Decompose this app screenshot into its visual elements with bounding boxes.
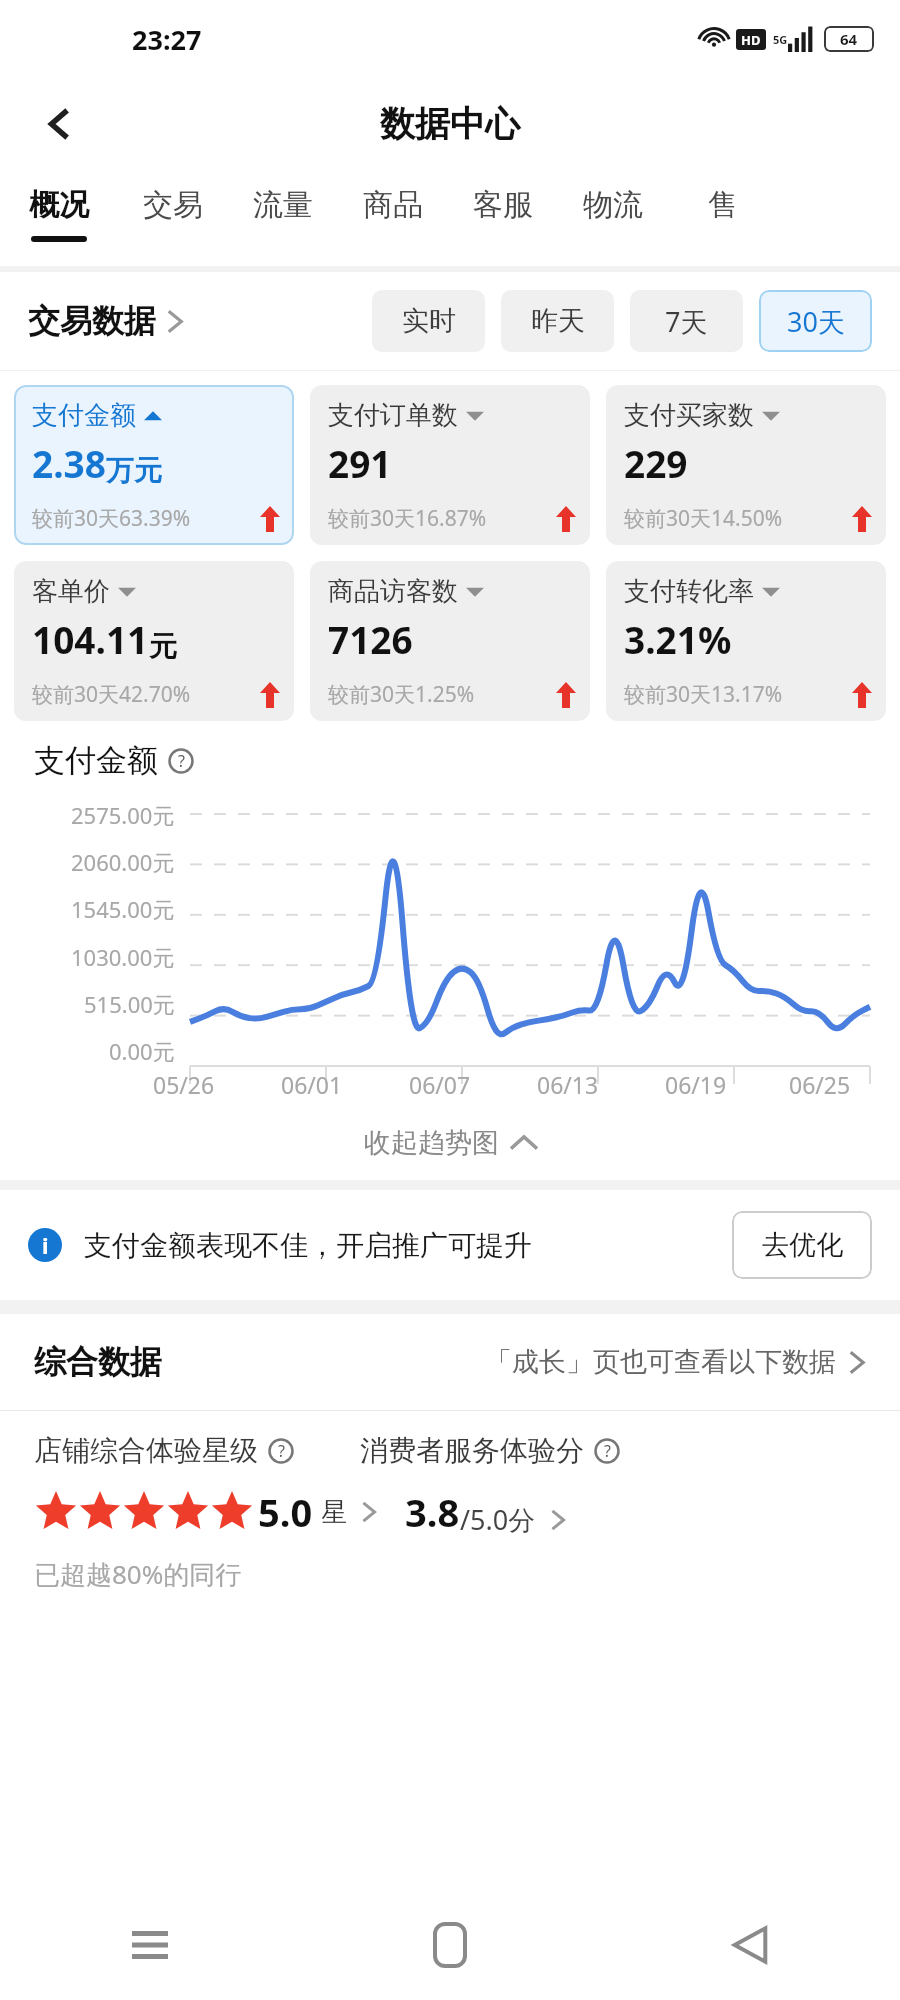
staticText: /5.0分	[460, 1501, 536, 1538]
staticText: HD	[741, 31, 761, 49]
staticText: 较前30天13.17%	[624, 680, 783, 709]
button[interactable]: 支付金额	[14, 385, 294, 545]
staticText: 综合数据	[34, 1342, 162, 1382]
staticText: 229	[624, 438, 688, 488]
staticText: 去优化	[762, 1228, 843, 1262]
staticText: 「成长」页也可查看以下数据	[485, 1345, 836, 1379]
staticText: 06/19	[665, 1069, 727, 1100]
staticText: 店铺综合体验星级	[34, 1433, 258, 1468]
button[interactable]: 物流	[558, 170, 668, 266]
staticText: 30天	[787, 303, 845, 340]
button[interactable]: 收起趋势图	[0, 1114, 900, 1172]
staticText: 06/01	[281, 1069, 343, 1100]
staticText: 商品	[363, 186, 423, 224]
staticText: 流量	[253, 186, 313, 224]
button[interactable]: 5.0	[34, 1486, 377, 1538]
button[interactable]: 商品访客数	[310, 561, 590, 721]
staticText: 交易	[143, 186, 203, 224]
staticText: 数据中心	[380, 102, 520, 146]
button[interactable]: 支付转化率	[606, 561, 886, 721]
staticText: 支付金额	[32, 399, 136, 432]
button[interactable]: 客服	[448, 170, 558, 266]
staticText: 支付金额表现不佳，开启推广可提升	[84, 1228, 532, 1263]
button[interactable]: Back	[600, 1890, 900, 2000]
button[interactable]: Recent apps	[0, 1890, 300, 2000]
staticText: 1545.00元	[71, 894, 175, 924]
button[interactable]: 概况	[0, 170, 118, 266]
staticText: 较前30天16.87%	[328, 504, 487, 533]
staticText: 实时	[402, 304, 456, 338]
staticText: 5.0	[258, 1486, 313, 1538]
staticText: 2575.00元	[71, 800, 175, 830]
staticText: 支付买家数	[624, 399, 754, 432]
button[interactable]: 「成长」页也可查看以下数据	[485, 1345, 866, 1379]
staticText: 23:27	[132, 21, 202, 58]
staticText: 05/26	[153, 1069, 215, 1100]
button[interactable]: 售	[668, 170, 778, 266]
staticText: 06/25	[789, 1069, 851, 1100]
staticText: ?	[278, 1440, 285, 1462]
staticText: 3.21%	[624, 614, 732, 664]
staticText: 0.00元	[109, 1036, 175, 1066]
staticText: 291	[328, 438, 392, 488]
staticText: 较前30天1.25%	[328, 680, 475, 709]
button[interactable]: 支付订单数	[310, 385, 590, 545]
staticText: 7126	[328, 614, 413, 664]
staticText: 5G	[773, 32, 788, 47]
staticText: ?	[178, 750, 185, 772]
staticText: 收起趋势图	[364, 1126, 499, 1160]
button[interactable]: 实时	[372, 290, 485, 352]
staticText: 支付金额	[34, 741, 158, 780]
button[interactable]: 交易数据	[28, 301, 184, 341]
staticText: 客服	[473, 186, 533, 224]
staticText: 昨天	[531, 304, 585, 338]
staticText: 支付订单数	[328, 399, 458, 432]
staticText: 7天	[665, 303, 708, 340]
staticText: 已超越80%的同行	[34, 1556, 242, 1592]
staticText: 万元	[106, 453, 162, 488]
staticText: 104.11	[32, 614, 149, 664]
staticText: 交易数据	[28, 301, 156, 341]
staticText: 较前30天14.50%	[624, 504, 783, 533]
button[interactable]: 昨天	[501, 290, 614, 352]
button[interactable]: 支付买家数	[606, 385, 886, 545]
staticText: 06/13	[537, 1069, 599, 1100]
staticText: 星	[321, 1496, 347, 1529]
staticText: 较前30天42.70%	[32, 680, 191, 709]
staticText: i	[42, 1230, 49, 1260]
staticText: 物流	[583, 186, 643, 224]
button[interactable]: 流量	[228, 170, 338, 266]
staticText: 2.38	[32, 438, 106, 488]
staticText: 2060.00元	[71, 847, 175, 877]
staticText: 售	[708, 186, 738, 224]
button[interactable]: 7天	[630, 290, 743, 352]
staticText: 支付转化率	[624, 575, 754, 608]
staticText: 515.00元	[84, 989, 175, 1019]
staticText: 元	[149, 629, 177, 664]
staticText: 客单价	[32, 575, 110, 608]
button[interactable]: 商品	[338, 170, 448, 266]
staticText: 1030.00元	[71, 942, 175, 972]
staticText: 概况	[29, 186, 89, 224]
staticText: 消费者服务体验分	[360, 1433, 584, 1468]
button[interactable]: Home	[300, 1890, 600, 2000]
button[interactable]: 去优化	[732, 1211, 872, 1279]
button[interactable]: 3.8	[405, 1486, 566, 1538]
button[interactable]: 30天	[759, 290, 872, 352]
button[interactable]: 交易	[118, 170, 228, 266]
staticText: ?	[604, 1440, 611, 1462]
staticText: 较前30天63.39%	[32, 504, 191, 533]
staticText: 商品访客数	[328, 575, 458, 608]
staticText: 06/07	[409, 1069, 471, 1100]
staticText: 3.8	[405, 1486, 460, 1538]
button[interactable]: 客单价	[14, 561, 294, 721]
button[interactable]: Back	[34, 97, 88, 151]
staticText: 64	[840, 29, 858, 49]
